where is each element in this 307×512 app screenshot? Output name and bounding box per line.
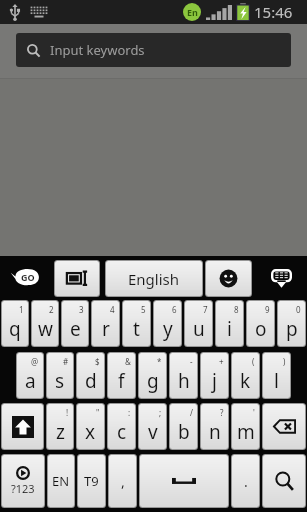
button[interactable]: t bbox=[123, 301, 150, 346]
staticText: En bbox=[187, 6, 198, 18]
staticText: 3 bbox=[79, 304, 84, 315]
staticText: c bbox=[117, 419, 127, 445]
staticText: ?123 bbox=[11, 481, 35, 496]
staticText: w bbox=[38, 316, 53, 342]
staticText: $ bbox=[95, 356, 100, 367]
button[interactable]: Symbols bbox=[2, 455, 44, 507]
button[interactable]: Backspace bbox=[263, 404, 305, 449]
staticText: u bbox=[193, 316, 205, 342]
button[interactable]: Space bbox=[140, 455, 228, 507]
staticText: d bbox=[85, 368, 97, 394]
button[interactable]: b bbox=[170, 404, 197, 449]
button[interactable]: p bbox=[278, 301, 305, 346]
staticText: 1 bbox=[19, 304, 24, 315]
staticText: x bbox=[85, 419, 96, 445]
staticText: e bbox=[70, 316, 81, 342]
staticText: g bbox=[147, 368, 159, 394]
staticText: T9 bbox=[84, 472, 99, 490]
staticText: 5 bbox=[141, 304, 146, 315]
staticText: 0 bbox=[296, 304, 301, 315]
staticText: / bbox=[190, 407, 193, 418]
staticText: t bbox=[133, 316, 140, 342]
button[interactable]: Shift bbox=[2, 404, 43, 449]
staticText: q bbox=[9, 316, 21, 342]
button[interactable]: g bbox=[139, 353, 166, 398]
button[interactable]: y bbox=[154, 301, 181, 346]
staticText: 2 bbox=[49, 304, 54, 315]
staticText: ' bbox=[253, 407, 255, 418]
staticText: l bbox=[274, 368, 279, 394]
button[interactable]: a bbox=[17, 353, 43, 398]
staticText: . bbox=[244, 472, 248, 491]
staticText: h bbox=[178, 368, 190, 394]
staticText: m bbox=[237, 419, 255, 445]
button[interactable]: j bbox=[201, 353, 228, 398]
button[interactable]: f bbox=[108, 353, 135, 398]
staticText: " bbox=[96, 407, 100, 418]
button[interactable]: , bbox=[109, 455, 136, 507]
button[interactable]: c bbox=[108, 404, 135, 449]
button[interactable]: w bbox=[32, 301, 58, 346]
button[interactable]: Search bbox=[263, 455, 305, 507]
staticText: 7 bbox=[203, 304, 208, 315]
button[interactable]: v bbox=[139, 404, 166, 449]
staticText: b bbox=[178, 419, 190, 445]
staticText: ; bbox=[159, 407, 162, 418]
staticText: f bbox=[118, 368, 125, 394]
button[interactable]: Emoji bbox=[206, 261, 251, 296]
staticText: y bbox=[163, 316, 173, 342]
button[interactable]: One hand mode bbox=[55, 261, 99, 296]
staticText: Input keywords bbox=[50, 41, 145, 59]
staticText: 15:46 bbox=[254, 2, 293, 22]
staticText: r bbox=[102, 316, 110, 342]
staticText: GO bbox=[21, 271, 35, 283]
button[interactable]: r bbox=[92, 301, 119, 346]
staticText: v bbox=[148, 419, 158, 445]
staticText: : bbox=[128, 407, 131, 418]
staticText: o bbox=[255, 316, 267, 342]
staticText: ! bbox=[66, 407, 69, 418]
button[interactable]: l bbox=[263, 353, 290, 398]
staticText: i bbox=[227, 316, 232, 342]
staticText: ( bbox=[252, 356, 255, 367]
staticText: EN bbox=[52, 472, 70, 490]
button[interactable]: . bbox=[232, 455, 259, 507]
button[interactable]: T9 bbox=[78, 455, 105, 507]
button[interactable]: h bbox=[170, 353, 197, 398]
button[interactable]: m bbox=[232, 404, 259, 449]
staticText: j bbox=[212, 368, 217, 394]
button[interactable]: z bbox=[47, 404, 73, 449]
staticText: @ bbox=[31, 356, 39, 367]
button[interactable]: e bbox=[62, 301, 88, 346]
staticText: z bbox=[56, 419, 65, 445]
staticText: # bbox=[63, 356, 69, 367]
staticText: k bbox=[240, 368, 251, 394]
staticText: 9 bbox=[265, 304, 270, 315]
staticText: English bbox=[128, 269, 180, 289]
staticText: n bbox=[209, 419, 221, 445]
button[interactable]: English bbox=[106, 261, 202, 296]
button[interactable]: i bbox=[216, 301, 243, 346]
staticText: , bbox=[121, 472, 125, 491]
button[interactable]: GO Keyboard bbox=[10, 264, 44, 288]
staticText: a bbox=[25, 368, 36, 394]
button[interactable]: u bbox=[185, 301, 212, 346]
button[interactable]: x bbox=[77, 404, 104, 449]
staticText: & bbox=[125, 356, 131, 367]
staticText: s bbox=[55, 368, 65, 394]
staticText: 6 bbox=[172, 304, 177, 315]
button[interactable]: Input keywords bbox=[16, 33, 291, 67]
staticText: + bbox=[219, 356, 224, 367]
staticText: ? bbox=[220, 407, 224, 418]
button[interactable]: d bbox=[77, 353, 104, 398]
button[interactable]: q bbox=[2, 301, 28, 346]
staticText: ) bbox=[283, 356, 286, 367]
staticText: 8 bbox=[234, 304, 239, 315]
button[interactable]: n bbox=[201, 404, 228, 449]
button[interactable]: s bbox=[47, 353, 73, 398]
button[interactable]: EN bbox=[48, 455, 74, 507]
staticText: p bbox=[286, 316, 298, 342]
button[interactable]: o bbox=[247, 301, 274, 346]
button[interactable]: k bbox=[232, 353, 259, 398]
button[interactable]: Hide keyboard bbox=[261, 260, 302, 297]
